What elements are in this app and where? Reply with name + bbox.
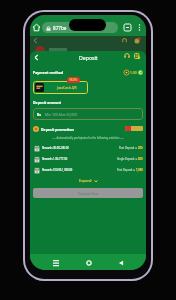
staticText: Deposit — [79, 54, 98, 61]
button[interactable]: 877be — [42, 22, 118, 33]
staticText: Min 100-Max 50,000 — [45, 112, 78, 117]
staticText: Deposit promotion — [41, 127, 74, 132]
button[interactable]: Customer service — [122, 51, 131, 60]
button[interactable]: Back — [114, 256, 127, 269]
staticText: 500 — [138, 157, 143, 161]
staticText: Payment method — [33, 70, 64, 75]
button[interactable]: Rs — [33, 108, 143, 120]
button[interactable]: Recent apps — [49, 256, 62, 269]
staticText: Deposit amount — [33, 100, 62, 105]
staticText: Deposit Now — [78, 191, 99, 196]
button[interactable]: Expand — [75, 177, 102, 184]
staticText: Expand — [79, 178, 92, 183]
staticText: 1,000 — [136, 168, 143, 172]
button[interactable]: 1.00 — [124, 70, 143, 75]
button[interactable]: Home — [31, 22, 42, 33]
button[interactable]: Customer service — [121, 37, 128, 44]
staticText: Single Deposit ≥ — [117, 157, 138, 161]
button[interactable]: Notifications — [133, 37, 140, 44]
button[interactable]: Rewards 100.00-1,000.00 — [33, 166, 143, 174]
button[interactable]: Back — [31, 36, 40, 45]
button[interactable]: Deposit Now — [33, 188, 143, 198]
button[interactable]: Back — [31, 51, 146, 64]
button[interactable]: Rewards 1.00-777.00 — [33, 155, 143, 163]
staticText: 98.8% — [69, 78, 78, 82]
button[interactable]: Home — [82, 256, 95, 269]
staticText: ---- Automatically participated in the f… — [33, 136, 143, 140]
staticText: Rewards 30.00-200.00 — [42, 146, 69, 150]
staticText: 877be — [53, 25, 67, 31]
button[interactable]: Rewards 30.00-200.00 — [33, 144, 143, 152]
staticText: First Deposit ≥ — [117, 168, 136, 172]
staticText: Rewards 100.00-1,000.00 — [42, 168, 73, 172]
staticText: Rewards 1.00-777.00 — [42, 157, 68, 161]
staticText: 200 — [138, 146, 143, 150]
button[interactable]: Tabs — [122, 22, 133, 33]
button[interactable]: Transaction records — [132, 51, 141, 60]
staticText: JazzCash-QR — [57, 85, 77, 90]
staticText: First Deposit ≥ — [119, 146, 138, 150]
button[interactable]: JazzCash-QR — [33, 81, 88, 94]
button[interactable]: Promotion details — [125, 126, 143, 131]
button[interactable]: More options — [134, 22, 145, 33]
staticText: 1.00 — [130, 70, 137, 75]
staticText: Rs — [37, 112, 41, 117]
